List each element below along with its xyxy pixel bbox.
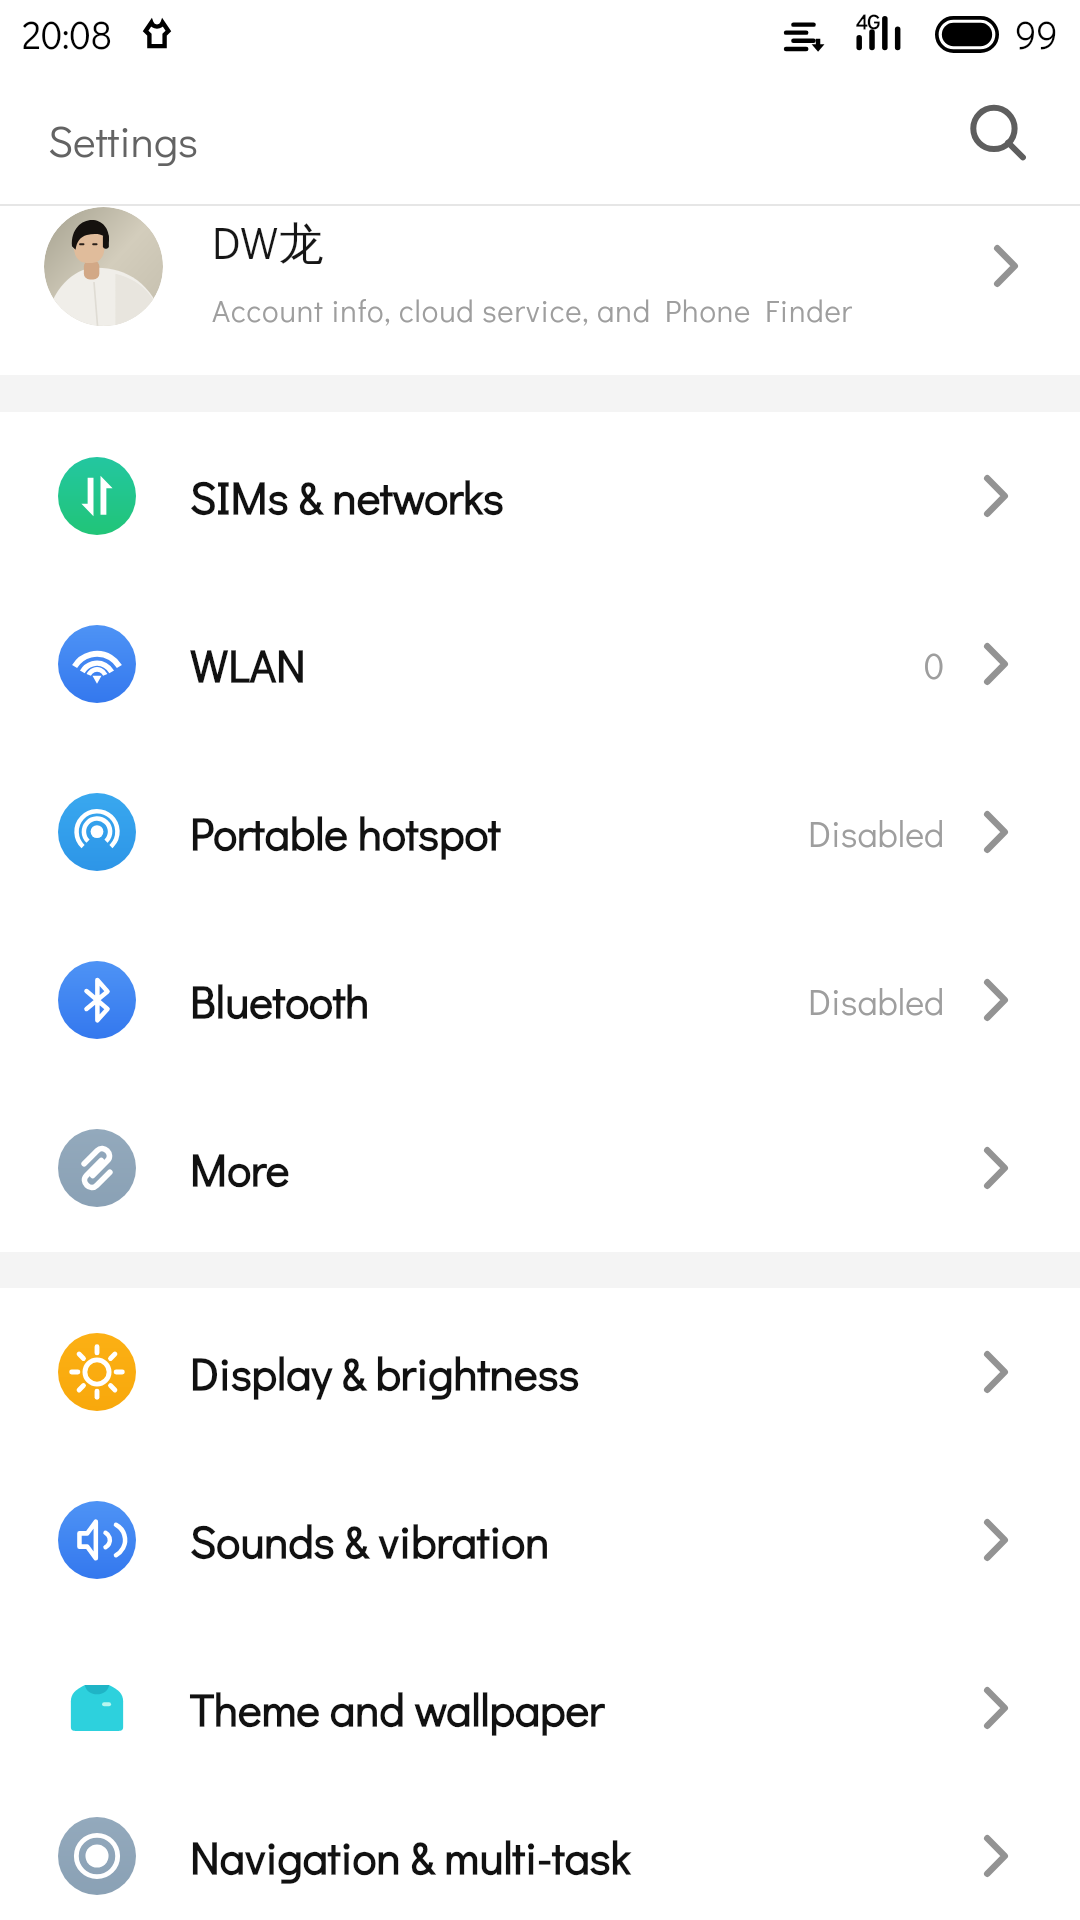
staticText: 20:08 (22, 9, 112, 59)
button[interactable]: More (0, 1084, 1080, 1252)
button[interactable]: Bluetooth (0, 916, 1080, 1084)
staticText: Navigation & multi-task (190, 1827, 984, 1886)
button[interactable]: DW龙 (0, 206, 1080, 375)
button[interactable]: WLAN (0, 580, 1080, 748)
staticText: WLAN (190, 635, 924, 694)
staticText: Settings (48, 112, 198, 168)
staticText: SIMs & networks (190, 467, 984, 526)
button[interactable]: Display & brightness (0, 1288, 1080, 1456)
staticText: Disabled (808, 809, 945, 856)
button[interactable]: Portable hotspot (0, 748, 1080, 916)
staticText: Bluetooth (190, 971, 808, 1030)
staticText: Display & brightness (190, 1343, 984, 1402)
button[interactable]: Search (952, 90, 1052, 190)
staticText: Sounds & vibration (190, 1511, 984, 1570)
staticText: More (190, 1139, 984, 1198)
staticText: Theme and wallpaper (190, 1679, 984, 1738)
staticText: Disabled (808, 977, 945, 1024)
button[interactable]: SIMs & networks (0, 412, 1080, 580)
button[interactable]: Navigation & multi-task (0, 1792, 1080, 1920)
staticText: Account info, cloud service, and Phone F… (212, 290, 853, 331)
staticText: DW龙 (212, 212, 324, 272)
staticText: 0 (924, 641, 945, 688)
staticText: Portable hotspot (190, 803, 808, 862)
button[interactable]: Theme and wallpaper (0, 1624, 1080, 1792)
staticText: 99 (1015, 9, 1058, 59)
staticText: 4G (856, 7, 880, 35)
button[interactable]: Sounds & vibration (0, 1456, 1080, 1624)
